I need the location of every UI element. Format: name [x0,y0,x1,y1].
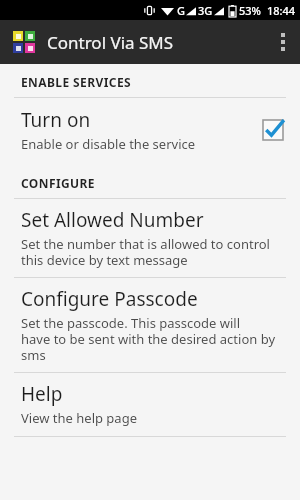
staticText: Help [21,381,63,407]
staticText: 18:44 [267,3,296,18]
staticText: Set Allowed Number [21,207,204,233]
staticText: ENABLE SERVICES [21,74,132,90]
staticText: Set the number that is allowed to contro… [21,235,270,268]
staticText: Enable or disable the service [21,135,196,153]
staticText: Configure Passcode [21,286,198,312]
button[interactable]: Help [0,373,300,436]
staticText: 3G [198,3,213,18]
staticText: Set the passcode. This passcode will hav… [21,314,276,363]
button[interactable]: Configure Passcode [0,278,300,372]
staticText: CONFIGURE [21,175,95,191]
staticText: 53% [239,3,261,18]
button[interactable]: More options [266,20,300,64]
button[interactable]: Turn on [0,98,300,163]
staticText: View the help page [21,409,137,427]
staticText: G [177,3,185,18]
button[interactable]: Set Allowed Number [0,199,300,277]
staticText: Turn on [21,107,91,133]
staticText: Control Via SMS [47,31,174,54]
